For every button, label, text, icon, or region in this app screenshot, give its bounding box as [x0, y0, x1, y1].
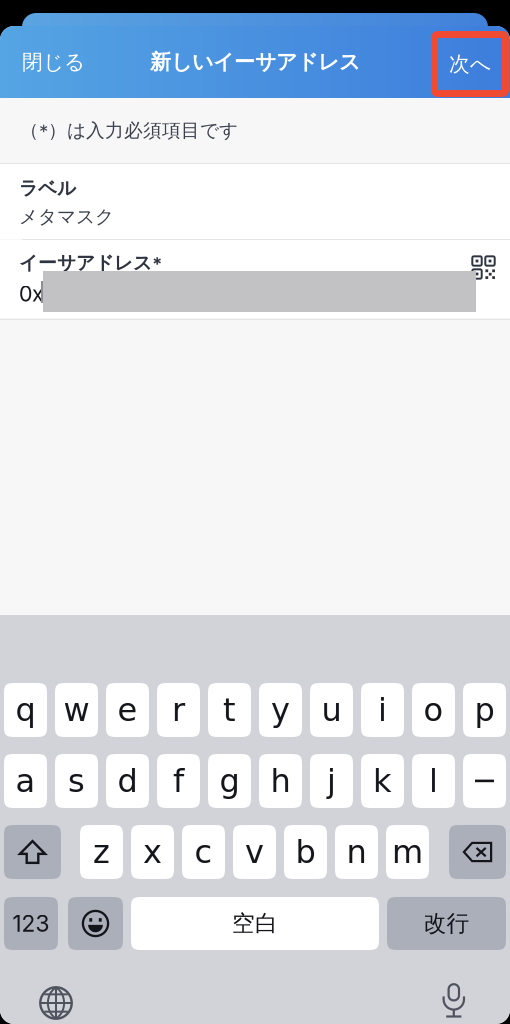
- button[interactable]: r: [157, 683, 200, 737]
- staticText: w: [63, 691, 89, 729]
- button[interactable]: m: [386, 825, 429, 879]
- staticText: 新しいイーサアドレス: [150, 49, 360, 75]
- button[interactable]: c: [182, 825, 225, 879]
- staticText: e: [117, 691, 137, 729]
- staticText: m: [392, 833, 423, 871]
- staticText: s: [68, 762, 85, 800]
- staticText: a: [15, 762, 35, 800]
- staticText: f: [173, 762, 184, 800]
- staticText: 閉じる: [22, 49, 85, 75]
- staticText: （*）は入力必須項目です: [20, 119, 238, 142]
- button[interactable]: v: [233, 825, 276, 879]
- button[interactable]: Dictation: [441, 983, 467, 1020]
- button[interactable]: 改行: [387, 897, 506, 950]
- staticText: 空白: [232, 909, 278, 938]
- staticText: 改行: [423, 909, 469, 938]
- staticText: r: [172, 691, 185, 729]
- staticText: n: [346, 833, 366, 871]
- staticText: x: [143, 833, 162, 871]
- staticText: b: [295, 833, 315, 871]
- button[interactable]: 閉じる: [22, 26, 104, 98]
- staticText: o: [423, 691, 443, 729]
- button[interactable]: k: [361, 754, 404, 808]
- button[interactable]: s: [55, 754, 98, 808]
- staticText: ラベル: [19, 176, 76, 200]
- button[interactable]: d: [106, 754, 149, 808]
- button[interactable]: q: [4, 683, 47, 737]
- button[interactable]: 次へ: [431, 31, 509, 97]
- staticText: 次へ: [449, 51, 491, 77]
- button[interactable]: g: [208, 754, 251, 808]
- staticText: p: [474, 691, 494, 729]
- staticText: 123: [12, 910, 49, 937]
- button[interactable]: u: [310, 683, 353, 737]
- staticText: l: [429, 762, 438, 800]
- staticText: メタマスク: [19, 205, 114, 228]
- staticText: h: [270, 762, 290, 800]
- button[interactable]: l: [412, 754, 455, 808]
- button[interactable]: Delete: [449, 825, 506, 879]
- staticText: v: [245, 833, 264, 871]
- button[interactable]: 空白: [131, 897, 379, 950]
- button[interactable]: Emoji: [68, 897, 123, 950]
- staticText: イーサアドレス*: [19, 251, 162, 275]
- button[interactable]: t: [208, 683, 251, 737]
- button[interactable]: 123: [4, 897, 58, 950]
- button[interactable]: Next keyboard: [39, 986, 73, 1020]
- staticText: c: [194, 833, 212, 871]
- button[interactable]: x: [131, 825, 174, 879]
- staticText: g: [219, 762, 239, 800]
- button[interactable]: Scan QR code: [471, 255, 496, 280]
- staticText: u: [321, 691, 341, 729]
- button[interactable]: y: [259, 683, 302, 737]
- staticText: j: [327, 762, 336, 800]
- button[interactable]: e: [106, 683, 149, 737]
- button[interactable]: n: [335, 825, 378, 879]
- button[interactable]: b: [284, 825, 327, 879]
- staticText: k: [373, 762, 392, 800]
- button[interactable]: z: [80, 825, 123, 879]
- staticText: d: [117, 762, 137, 800]
- button[interactable]: a: [4, 754, 47, 808]
- button[interactable]: ー: [463, 754, 506, 808]
- staticText: y: [271, 691, 290, 729]
- button[interactable]: p: [463, 683, 506, 737]
- staticText: z: [93, 833, 110, 871]
- button[interactable]: j: [310, 754, 353, 808]
- staticText: q: [15, 691, 35, 729]
- button[interactable]: h: [259, 754, 302, 808]
- button[interactable]: i: [361, 683, 404, 737]
- staticText: 0x: [19, 281, 44, 307]
- button[interactable]: w: [55, 683, 98, 737]
- staticText: t: [223, 691, 236, 729]
- staticText: i: [378, 691, 387, 729]
- button[interactable]: o: [412, 683, 455, 737]
- button[interactable]: Shift: [4, 825, 61, 879]
- button[interactable]: f: [157, 754, 200, 808]
